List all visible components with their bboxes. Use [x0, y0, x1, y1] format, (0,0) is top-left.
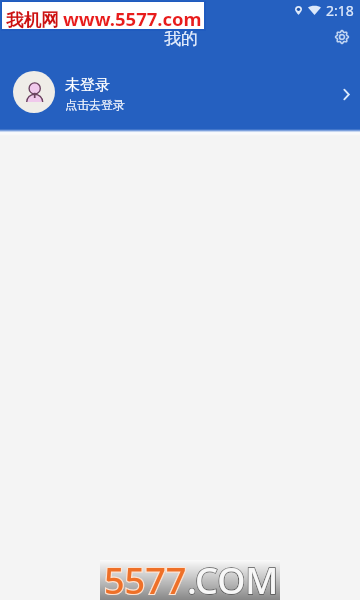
other: Open account [336, 84, 356, 104]
staticText: 5577 [104, 556, 187, 600]
button[interactable]: 未登录 [0, 56, 360, 128]
staticText: 5577 [104, 556, 187, 600]
staticText: 我的 [164, 28, 198, 49]
staticText: www.5577.com [63, 6, 202, 31]
staticText: .COM [187, 556, 279, 600]
staticText: 点击去登录 [65, 97, 125, 112]
button[interactable]: Settings [330, 25, 354, 49]
staticText: .COM [187, 556, 279, 600]
staticText: 未登录 [65, 76, 110, 95]
staticText: 我机网 [6, 9, 59, 31]
staticText: 2:18 [326, 1, 354, 20]
